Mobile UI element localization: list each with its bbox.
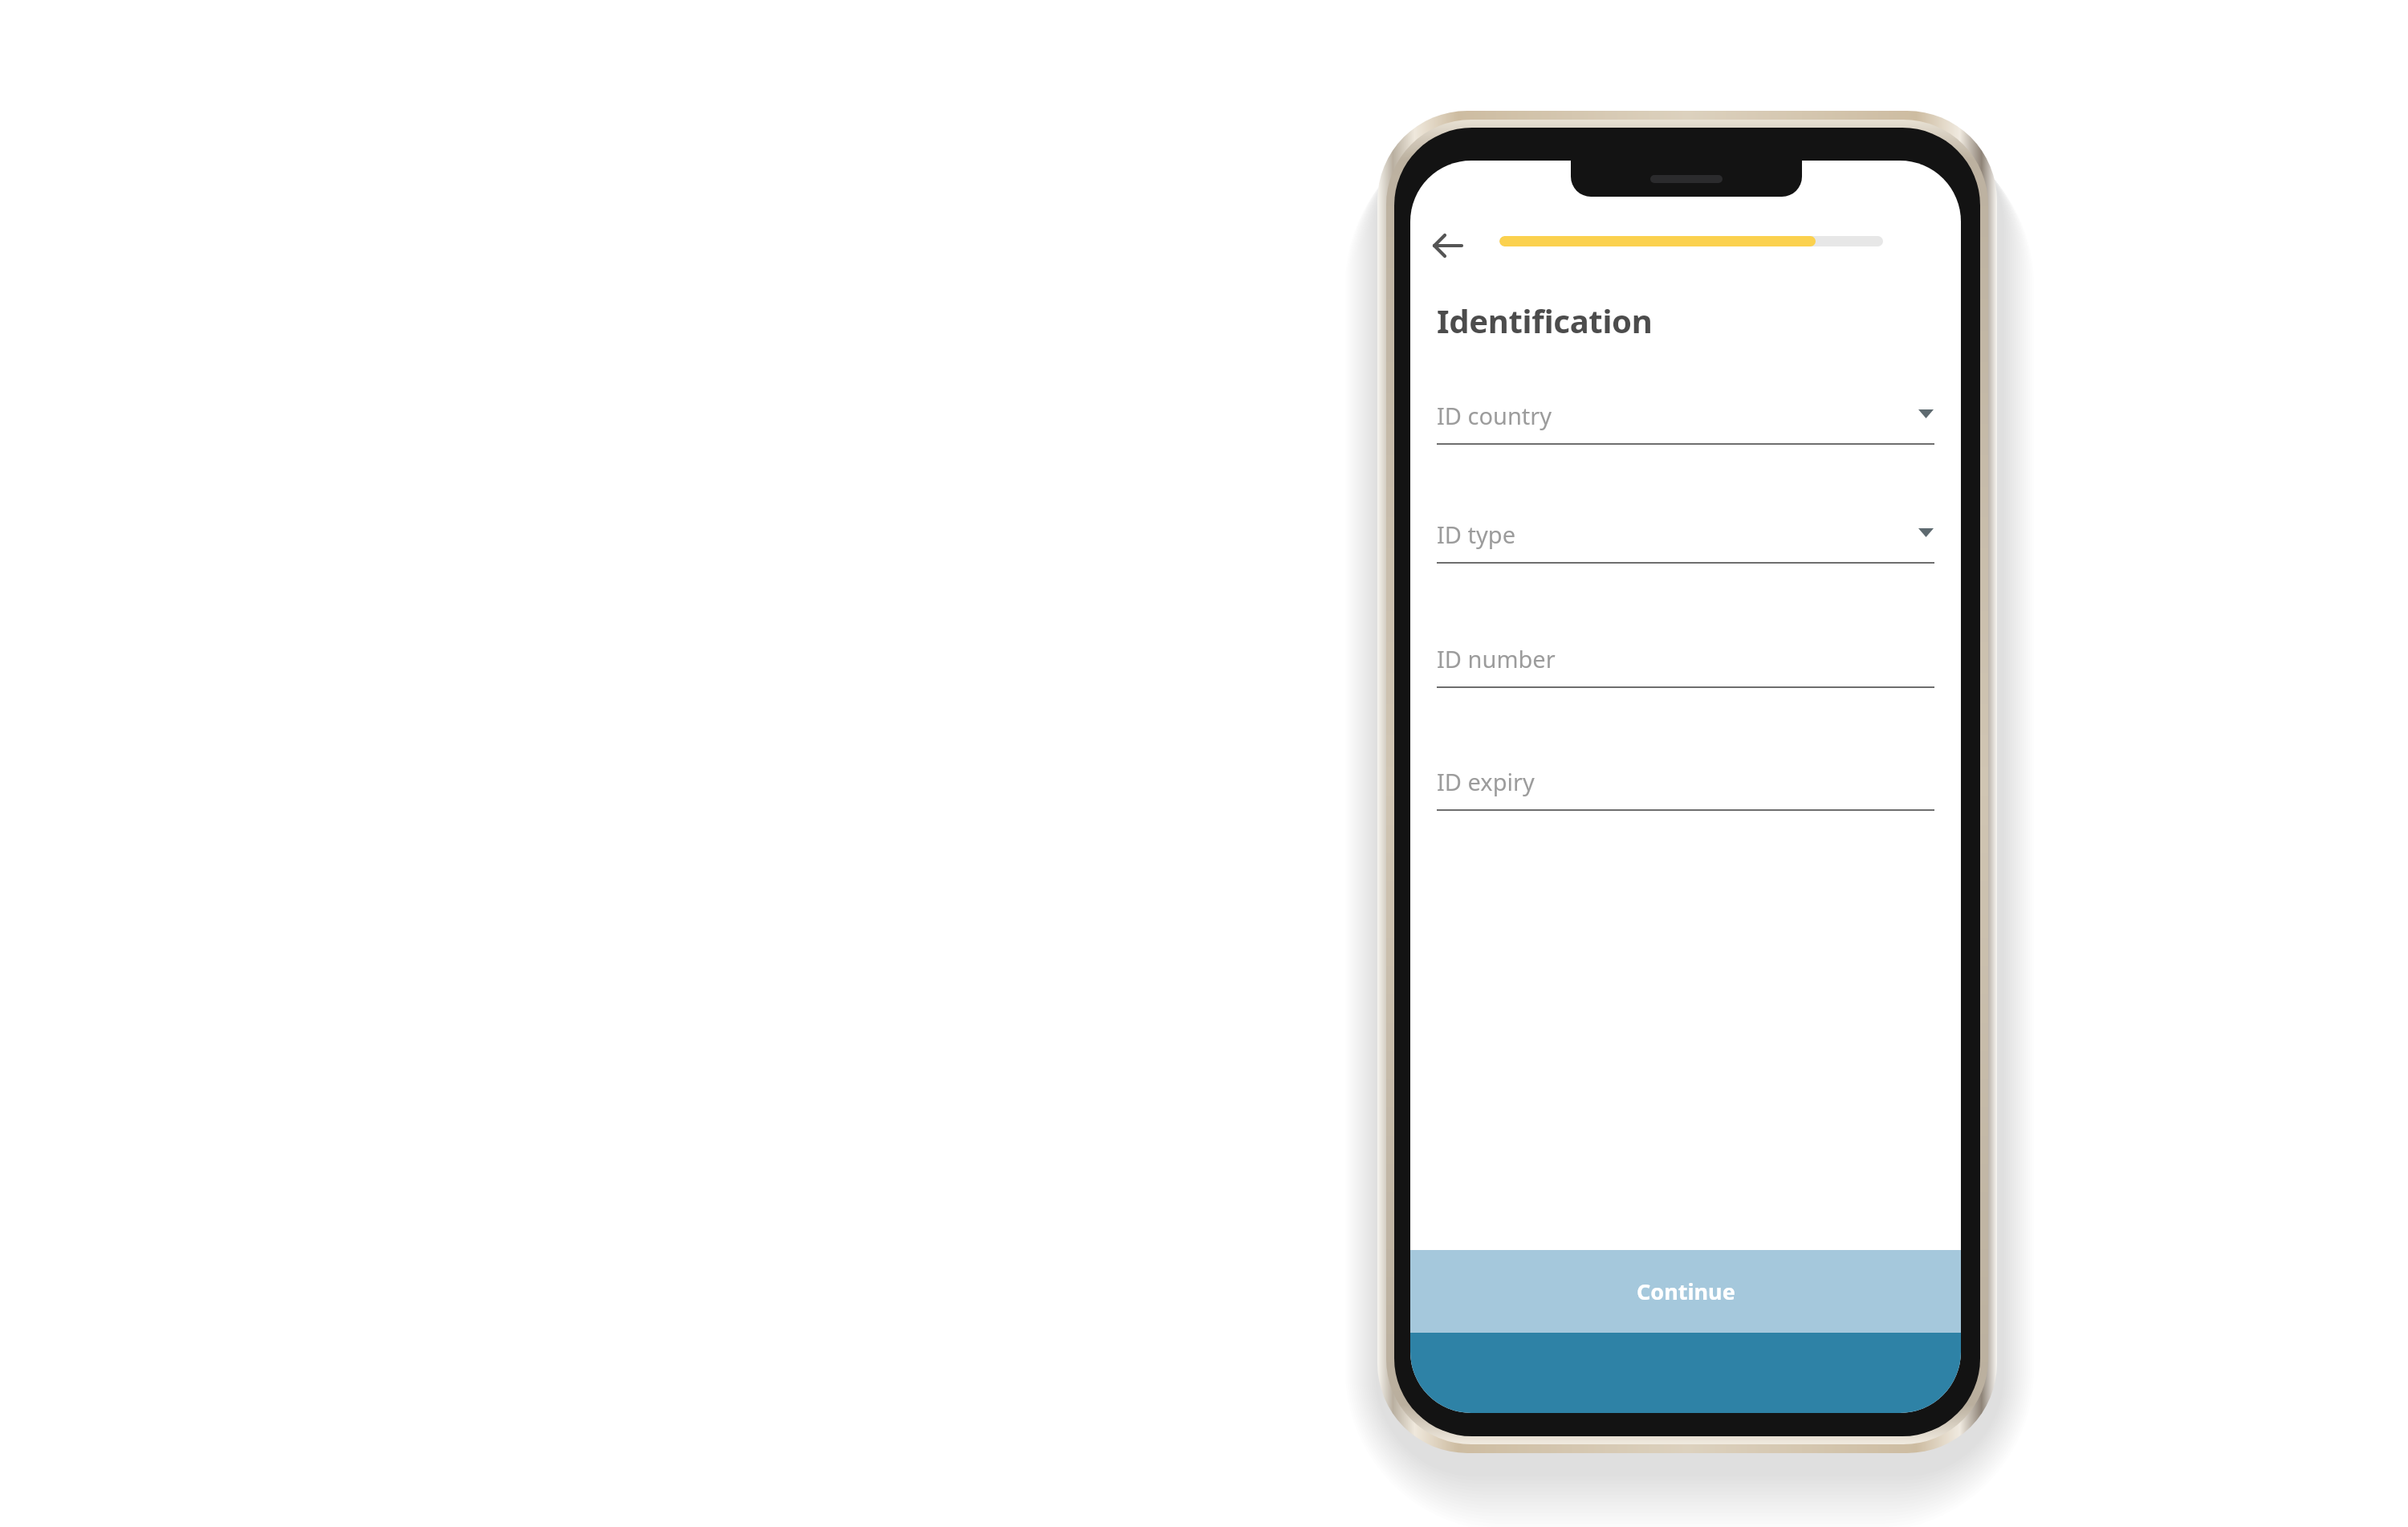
- staticText: Identification: [1437, 299, 1653, 342]
- button[interactable]: Continue: [1410, 1250, 1961, 1333]
- staticText: ID country: [1437, 400, 1552, 431]
- staticText: ID expiry: [1437, 766, 1535, 797]
- staticText: ID type: [1437, 519, 1515, 550]
- button[interactable]: Back: [1423, 222, 1471, 270]
- staticText: Continue: [1637, 1277, 1735, 1306]
- button[interactable]: ID type: [1437, 512, 1934, 575]
- button[interactable]: ID expiry: [1437, 759, 1934, 822]
- button[interactable]: ID country: [1437, 393, 1934, 456]
- button[interactable]: ID number: [1437, 637, 1934, 699]
- staticText: ID number: [1437, 643, 1556, 674]
